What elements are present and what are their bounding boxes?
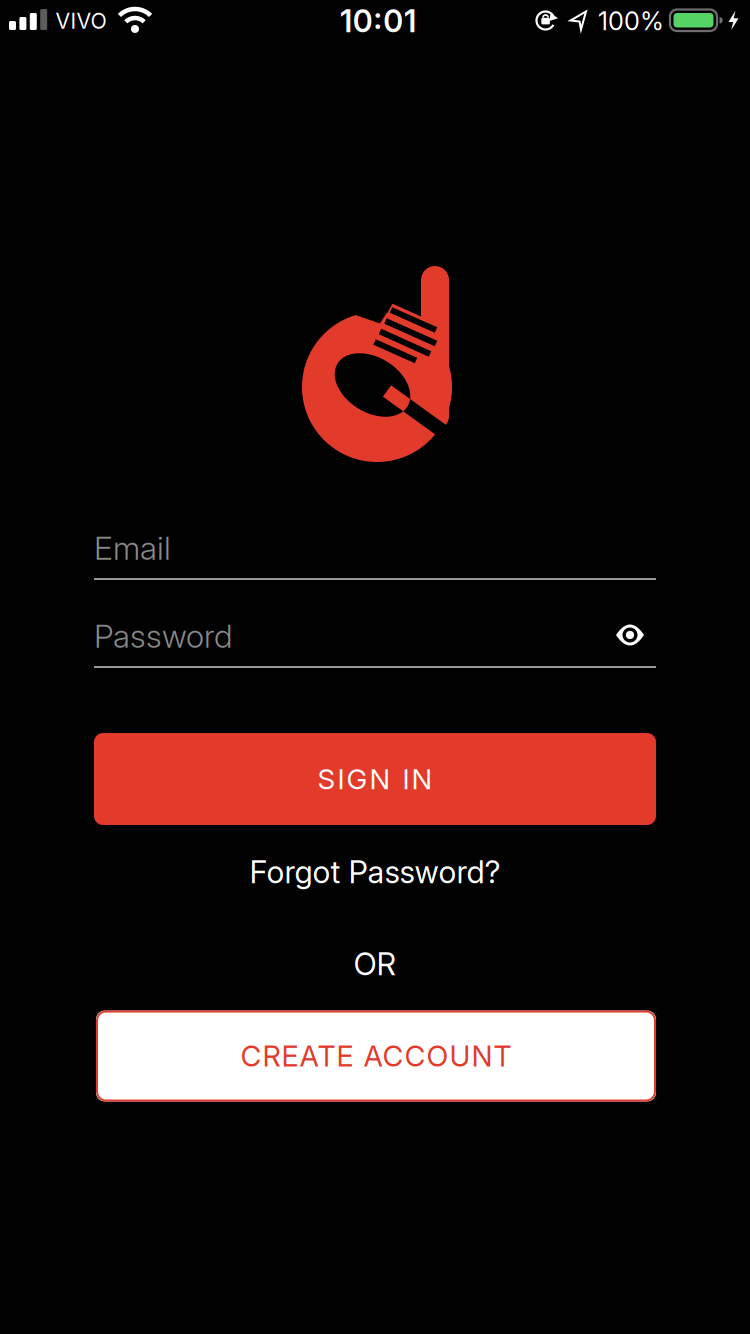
- button[interactable]: Forgot Password?: [249, 853, 500, 891]
- button[interactable]: CREATE ACCOUNT: [96, 1010, 656, 1101]
- staticText: CREATE ACCOUNT: [240, 1039, 511, 1073]
- staticText: Forgot Password?: [249, 853, 500, 891]
- staticText: Password: [94, 617, 233, 655]
- staticText: Email: [94, 529, 171, 567]
- staticText: 10:01: [340, 2, 416, 39]
- button[interactable]: Password: [0, 0, 750, 1334]
- staticText: SIGN IN: [317, 762, 432, 796]
- staticText: 100%: [598, 6, 664, 36]
- staticText: OR: [353, 945, 396, 982]
- button[interactable]: Show password: [0, 0, 750, 1334]
- button[interactable]: Email: [0, 0, 750, 1334]
- button[interactable]: SIGN IN: [94, 733, 656, 825]
- staticText: VIVO: [55, 8, 106, 34]
